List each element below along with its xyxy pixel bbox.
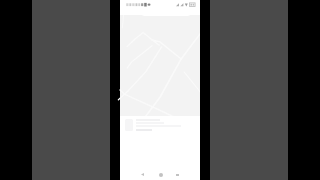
button[interactable]: Recent apps <box>173 170 182 179</box>
button[interactable]: Home <box>156 170 165 179</box>
button[interactable]: Back <box>138 170 147 179</box>
button[interactable] <box>120 116 200 165</box>
button[interactable]: Search here <box>142 5 190 16</box>
